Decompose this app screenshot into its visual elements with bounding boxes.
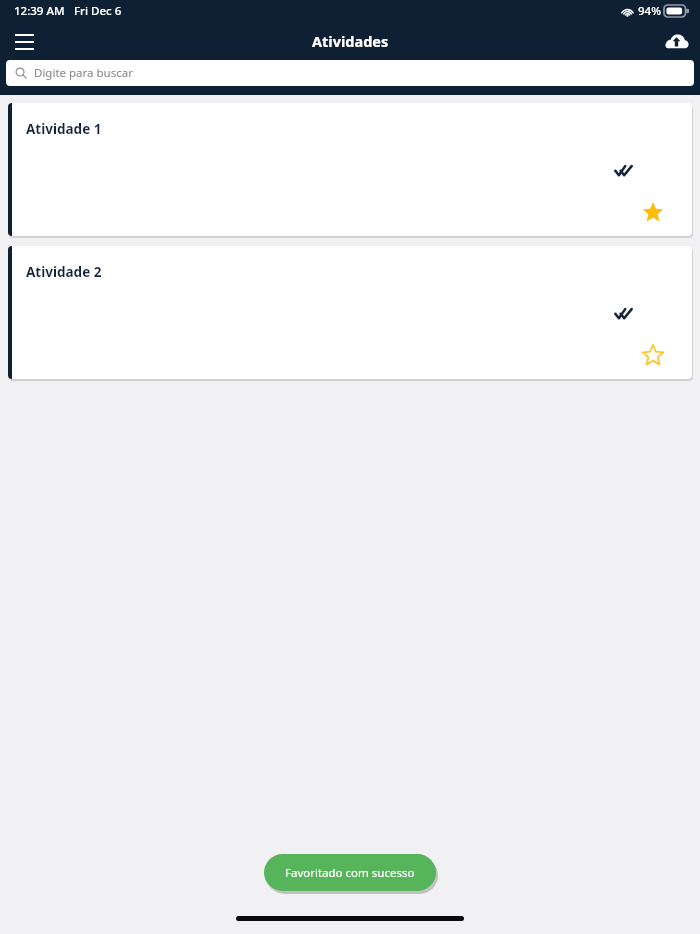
staticText: Favoritado com sucesso [287, 868, 417, 884]
staticText: 12:39 AM [14, 3, 65, 19]
button[interactable]: Upload [658, 23, 694, 59]
staticText: Fri Dec 6 [74, 3, 122, 19]
button[interactable]: Digite para buscar [6, 60, 694, 86]
button[interactable]: Atividade 2 [8, 246, 692, 379]
staticText: 94% [638, 3, 661, 19]
button[interactable]: Concluído [610, 157, 636, 183]
staticText: Atividades [312, 31, 389, 51]
staticText: Atividade 1 [26, 120, 102, 138]
staticText: Digite para buscar [34, 65, 133, 81]
button[interactable]: Favoritar [638, 340, 668, 370]
button[interactable]: Desfavoritar [638, 197, 668, 227]
button[interactable]: Favoritado com sucesso [264, 854, 436, 891]
button[interactable]: Menu [6, 23, 42, 59]
button[interactable]: Atividade 1 [8, 103, 692, 236]
staticText: Atividade 2 [26, 263, 102, 281]
staticText: Favoritado com sucesso [285, 865, 415, 881]
button[interactable]: Concluído [610, 300, 636, 326]
